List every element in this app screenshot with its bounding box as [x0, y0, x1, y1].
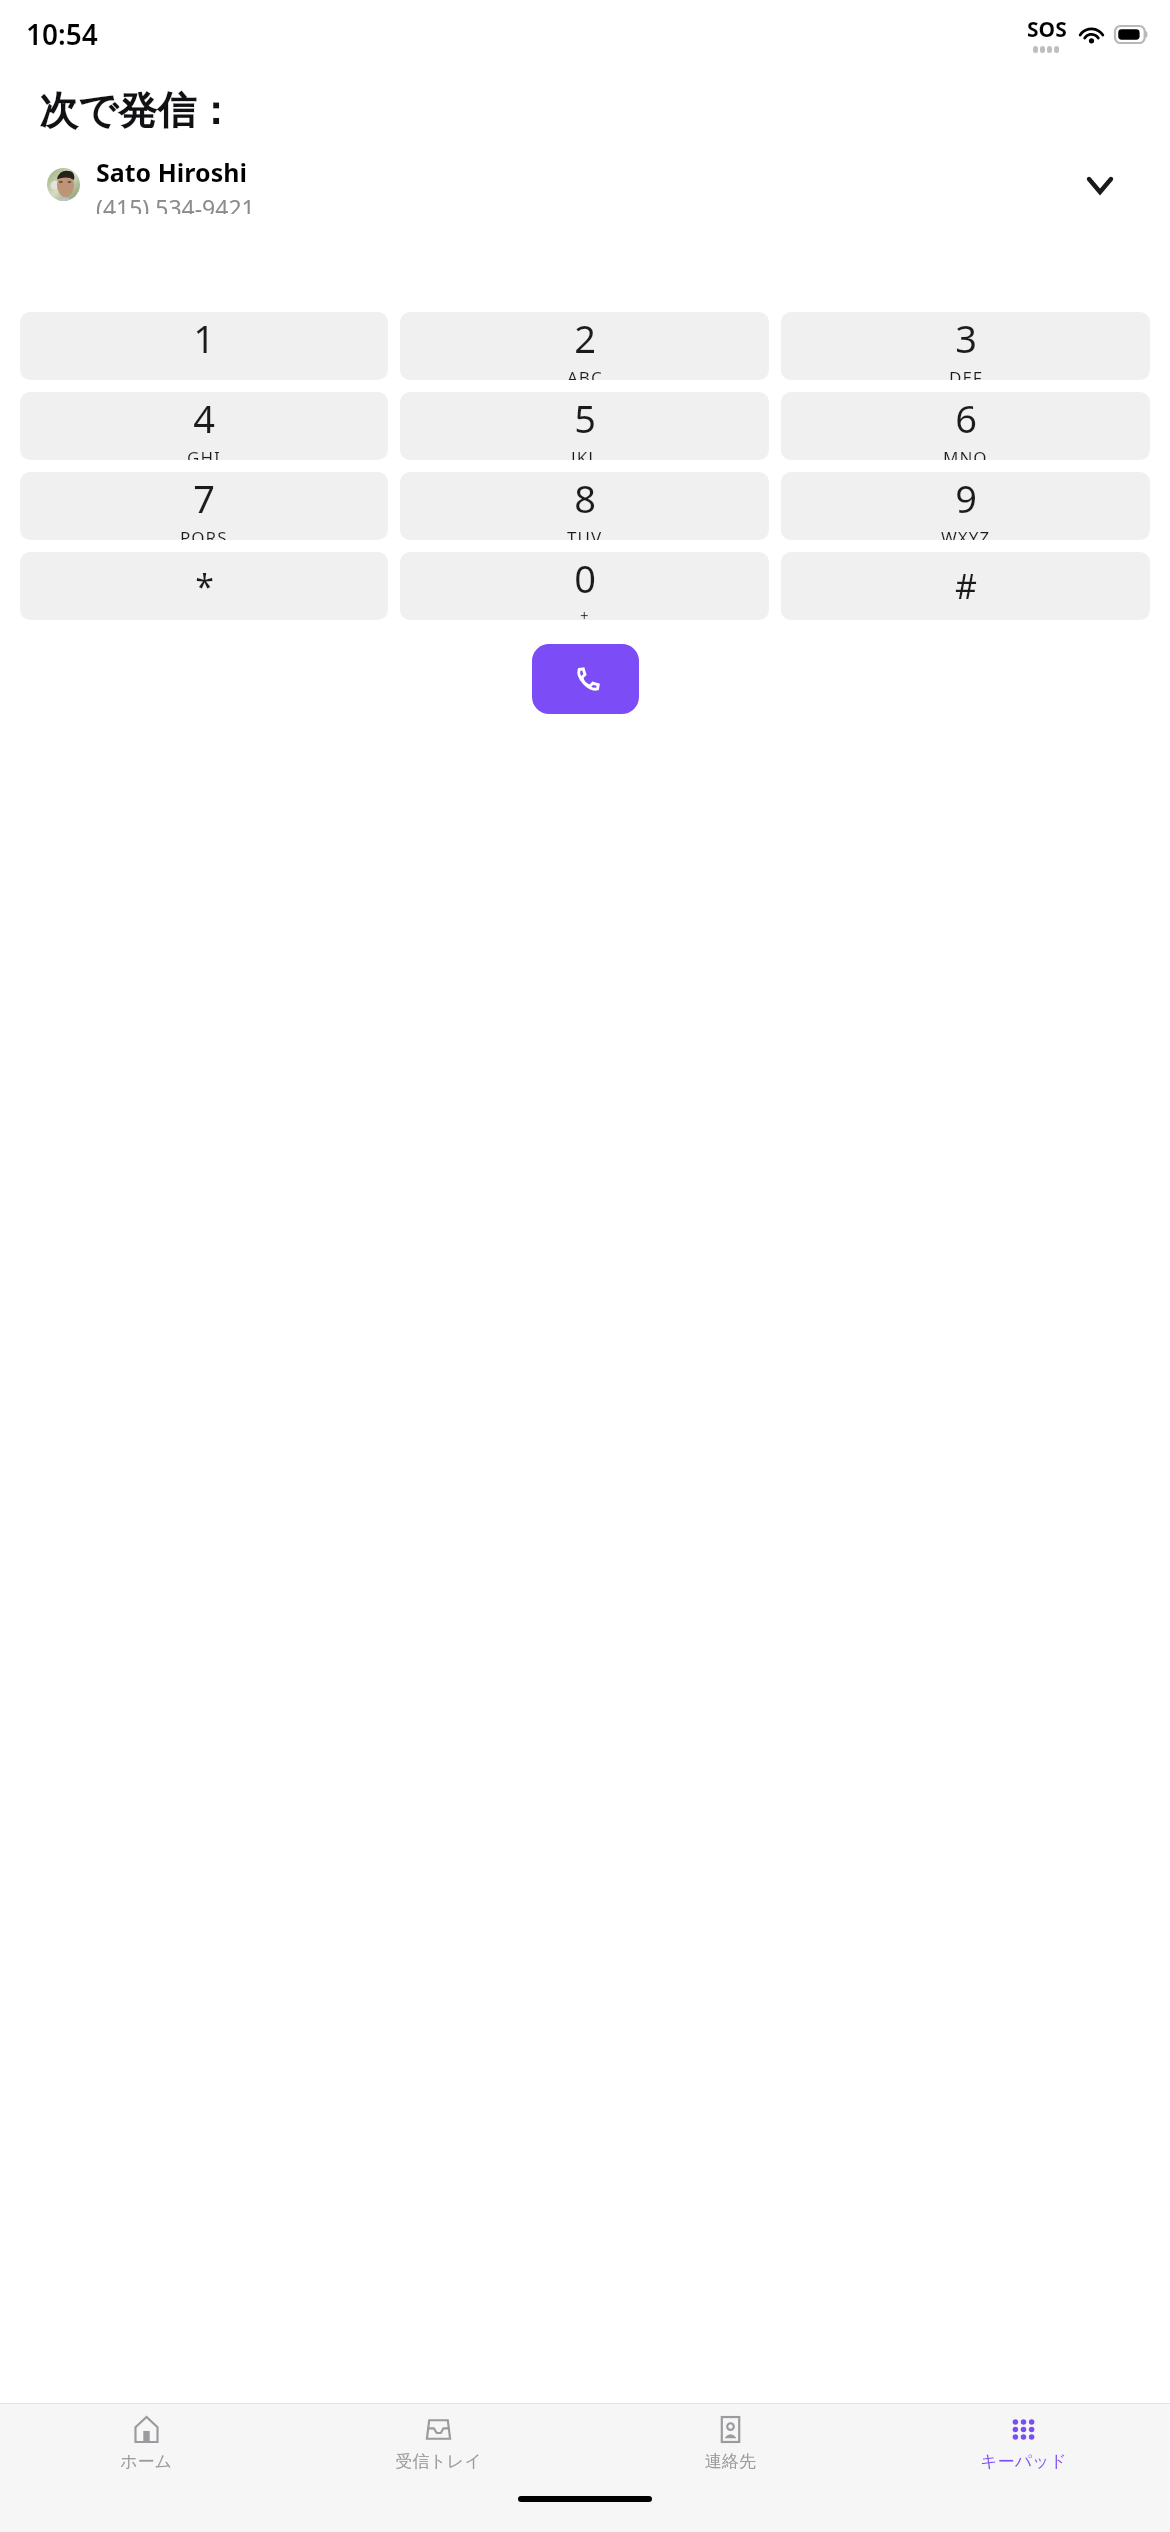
staticText: 0: [574, 552, 596, 604]
button[interactable]: ホーム: [0, 2404, 292, 2484]
button[interactable]: *: [20, 552, 388, 620]
button[interactable]: 0: [400, 552, 769, 620]
staticText: 8: [574, 472, 596, 524]
button[interactable]: 受信トレイ: [292, 2404, 584, 2484]
button[interactable]: 8: [400, 472, 769, 540]
staticText: SOS: [1027, 15, 1067, 44]
staticText: Sato Hiroshi: [96, 155, 247, 189]
button[interactable]: 連絡先: [584, 2404, 877, 2484]
button[interactable]: Sato Hiroshi: [39, 155, 1131, 214]
button[interactable]: 5: [400, 392, 769, 460]
staticText: 受信トレイ: [395, 2451, 482, 2472]
staticText: 連絡先: [705, 2451, 756, 2472]
staticText: 1: [193, 312, 215, 364]
staticText: PQRS: [180, 526, 228, 540]
staticText: 9: [955, 472, 977, 524]
button[interactable]: 7: [20, 472, 388, 540]
button[interactable]: キーパッド: [877, 2404, 1170, 2484]
button[interactable]: 3: [781, 312, 1150, 380]
staticText: 10:54: [26, 15, 98, 53]
staticText: DEF: [949, 366, 983, 380]
button[interactable]: 4: [20, 392, 388, 460]
button[interactable]: 9: [781, 472, 1150, 540]
staticText: 5: [574, 392, 596, 444]
staticText: TUV: [567, 526, 603, 540]
staticText: 6: [955, 392, 977, 444]
staticText: *: [195, 563, 214, 609]
staticText: 次で発信：: [39, 86, 235, 135]
staticText: #: [955, 563, 977, 609]
staticText: 2: [574, 312, 596, 364]
staticText: JKL: [571, 446, 599, 460]
staticText: WXYZ: [941, 526, 991, 540]
staticText: ABC: [567, 366, 603, 380]
staticText: +: [580, 605, 590, 620]
staticText: MNO: [943, 446, 988, 460]
staticText: (415) 534-9421: [96, 192, 255, 214]
button[interactable]: Expand contact: [1083, 168, 1117, 202]
button[interactable]: #: [781, 552, 1150, 620]
staticText: GHI: [187, 446, 221, 460]
staticText: ホーム: [120, 2451, 172, 2472]
button[interactable]: Call: [532, 644, 639, 714]
button[interactable]: 6: [781, 392, 1150, 460]
button[interactable]: 2: [400, 312, 769, 380]
staticText: キーパッド: [980, 2451, 1067, 2472]
button[interactable]: 1: [20, 312, 388, 380]
staticText: 4: [193, 392, 215, 444]
staticText: 3: [955, 312, 977, 364]
staticText: 7: [193, 472, 215, 524]
